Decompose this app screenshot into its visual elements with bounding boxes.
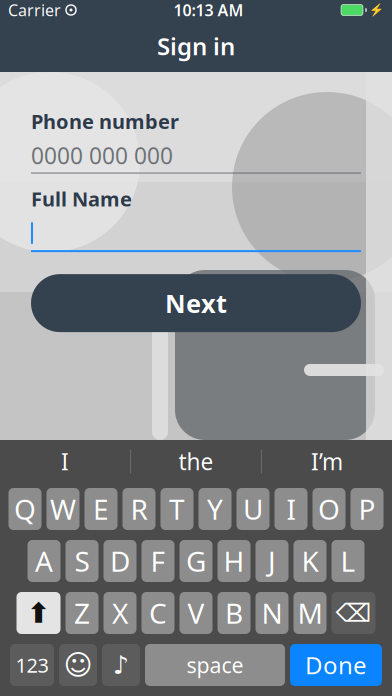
button[interactable]: N: [255, 592, 288, 634]
button[interactable]: K: [293, 540, 326, 582]
staticText: U: [243, 490, 263, 528]
staticText: V: [187, 594, 204, 632]
staticText: Q: [14, 490, 36, 528]
button[interactable]: C: [141, 592, 174, 634]
staticText: ⚡: [369, 3, 384, 17]
staticText: J: [268, 542, 276, 580]
button[interactable]: V: [179, 592, 212, 634]
button[interactable]: M: [293, 592, 326, 634]
button[interactable]: D: [103, 540, 136, 582]
staticText: Carrier: [8, 0, 61, 21]
staticText: Full Name: [31, 186, 132, 212]
button[interactable]: 123: [10, 644, 54, 686]
staticText: P: [358, 490, 375, 528]
staticText: 123: [15, 652, 48, 678]
staticText: ☺: [63, 649, 92, 681]
staticText: H: [223, 542, 244, 580]
button[interactable]: G: [179, 540, 212, 582]
staticText: Z: [74, 594, 90, 632]
button[interactable]: Dictation: [102, 644, 140, 686]
staticText: T: [169, 490, 185, 528]
button[interactable]: P: [350, 488, 383, 530]
button[interactable]: Delete: [331, 592, 375, 634]
staticText: I’m: [311, 446, 343, 476]
button[interactable]: W: [46, 488, 79, 530]
staticText: N: [261, 594, 282, 632]
staticText: M: [297, 594, 322, 632]
staticText: ⬆: [27, 597, 50, 629]
button[interactable]: Emoji: [59, 644, 97, 686]
staticText: Next: [165, 286, 227, 320]
staticText: K: [301, 542, 318, 580]
staticText: 10:13 AM: [173, 0, 243, 21]
staticText: Phone number: [31, 108, 179, 135]
staticText: Y: [207, 490, 223, 528]
button[interactable]: Z: [65, 592, 98, 634]
button[interactable]: Y: [198, 488, 231, 530]
staticText: D: [110, 542, 130, 580]
button[interactable]: space: [145, 644, 285, 686]
staticText: I: [286, 490, 295, 528]
button[interactable]: F: [141, 540, 174, 582]
button[interactable]: H: [217, 540, 250, 582]
button[interactable]: R: [122, 488, 155, 530]
staticText: space: [186, 651, 243, 679]
staticText: E: [93, 490, 109, 528]
button[interactable]: the: [131, 440, 261, 483]
button[interactable]: O: [312, 488, 345, 530]
staticText: G: [186, 542, 206, 580]
button[interactable]: X: [103, 592, 136, 634]
staticText: O: [318, 490, 340, 528]
staticText: X: [112, 594, 128, 632]
staticText: I: [61, 446, 69, 476]
staticText: F: [150, 542, 165, 580]
button[interactable]: J: [255, 540, 288, 582]
staticText: C: [149, 594, 167, 632]
button[interactable]: S: [65, 540, 98, 582]
button[interactable]: I: [274, 488, 307, 530]
staticText: Done: [305, 649, 367, 681]
staticText: L: [340, 542, 355, 580]
staticText: B: [225, 594, 243, 632]
button[interactable]: E: [84, 488, 117, 530]
button[interactable]: I’m: [262, 440, 392, 483]
staticText: ⌫: [335, 599, 371, 627]
staticText: ♪: [113, 651, 129, 679]
button[interactable]: L: [331, 540, 364, 582]
staticText: A: [35, 542, 53, 580]
staticText: W: [50, 490, 76, 528]
button[interactable]: U: [236, 488, 269, 530]
button[interactable]: Shift: [16, 592, 60, 634]
staticText: R: [130, 490, 147, 528]
button[interactable]: Done: [290, 644, 382, 686]
button[interactable]: B: [217, 592, 250, 634]
button[interactable]: Q: [8, 488, 41, 530]
staticText: the: [178, 446, 213, 476]
staticText: S: [74, 542, 89, 580]
staticText: 0000 000 000: [31, 140, 173, 171]
button[interactable]: T: [160, 488, 193, 530]
button[interactable]: A: [27, 540, 60, 582]
button[interactable]: Next: [31, 274, 361, 332]
staticText: Sign in: [157, 30, 235, 62]
button[interactable]: I: [0, 440, 130, 483]
